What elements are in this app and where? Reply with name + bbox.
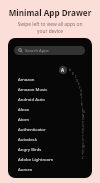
staticText: N [82,114,85,118]
button[interactable]: Aurora [18,164,70,174]
staticText: Angry Birds [18,146,42,152]
button[interactable]: Atom [18,114,70,124]
staticText: Amazon Music [18,86,48,92]
button[interactable]: Amazon Music [18,84,70,94]
staticText: S [82,131,84,135]
staticText: T [82,135,84,139]
button[interactable]: Alexa [18,104,70,114]
staticText: P [82,121,84,125]
staticText: Amazon [18,76,35,82]
staticText: Z [82,156,84,160]
staticText: L [82,107,84,111]
staticText: Atom [18,116,29,122]
staticText: O [82,117,85,121]
staticText: A [69,68,71,72]
staticText: Authenticator [18,126,46,132]
staticText: I [81,96,82,100]
staticText: Q [82,124,85,128]
staticText: Adobe Lightroom [18,156,54,162]
staticText: W [82,145,85,149]
staticText: U [82,138,85,142]
button[interactable]: Search Apps [14,46,85,55]
staticText: G [80,89,83,93]
staticText: J [81,100,82,104]
button[interactable]: Selected letter A [59,66,67,74]
button[interactable]: Autodesk [18,134,70,144]
staticText: Y [82,152,84,156]
staticText: B [72,72,74,76]
staticText: Search Apps [25,48,49,54]
staticText: Autodesk [18,136,37,142]
staticText: Alexa [18,106,29,112]
staticText: A [61,67,65,73]
staticText: M [82,110,85,114]
button[interactable]: Adobe Lightroom [18,154,70,164]
staticText: V [82,142,84,146]
staticText: Minimal App Drawer [7,7,93,18]
staticText: X [82,149,84,153]
staticText: K [81,103,83,107]
staticText: H [80,93,83,97]
staticText: Swipe left to view all apps on your devi… [7,21,93,34]
button[interactable]: Angry Birds [18,144,70,154]
staticText: R [82,128,84,132]
staticText: E [78,82,80,86]
staticText: C [75,75,77,79]
staticText: F [79,86,81,90]
staticText: Android Auto [18,96,45,102]
button[interactable]: Android Auto [18,94,70,104]
staticText: Aurora [18,166,32,172]
button[interactable]: Amazon [18,74,70,84]
staticText: D [76,79,79,83]
button[interactable]: Authenticator [18,124,70,134]
